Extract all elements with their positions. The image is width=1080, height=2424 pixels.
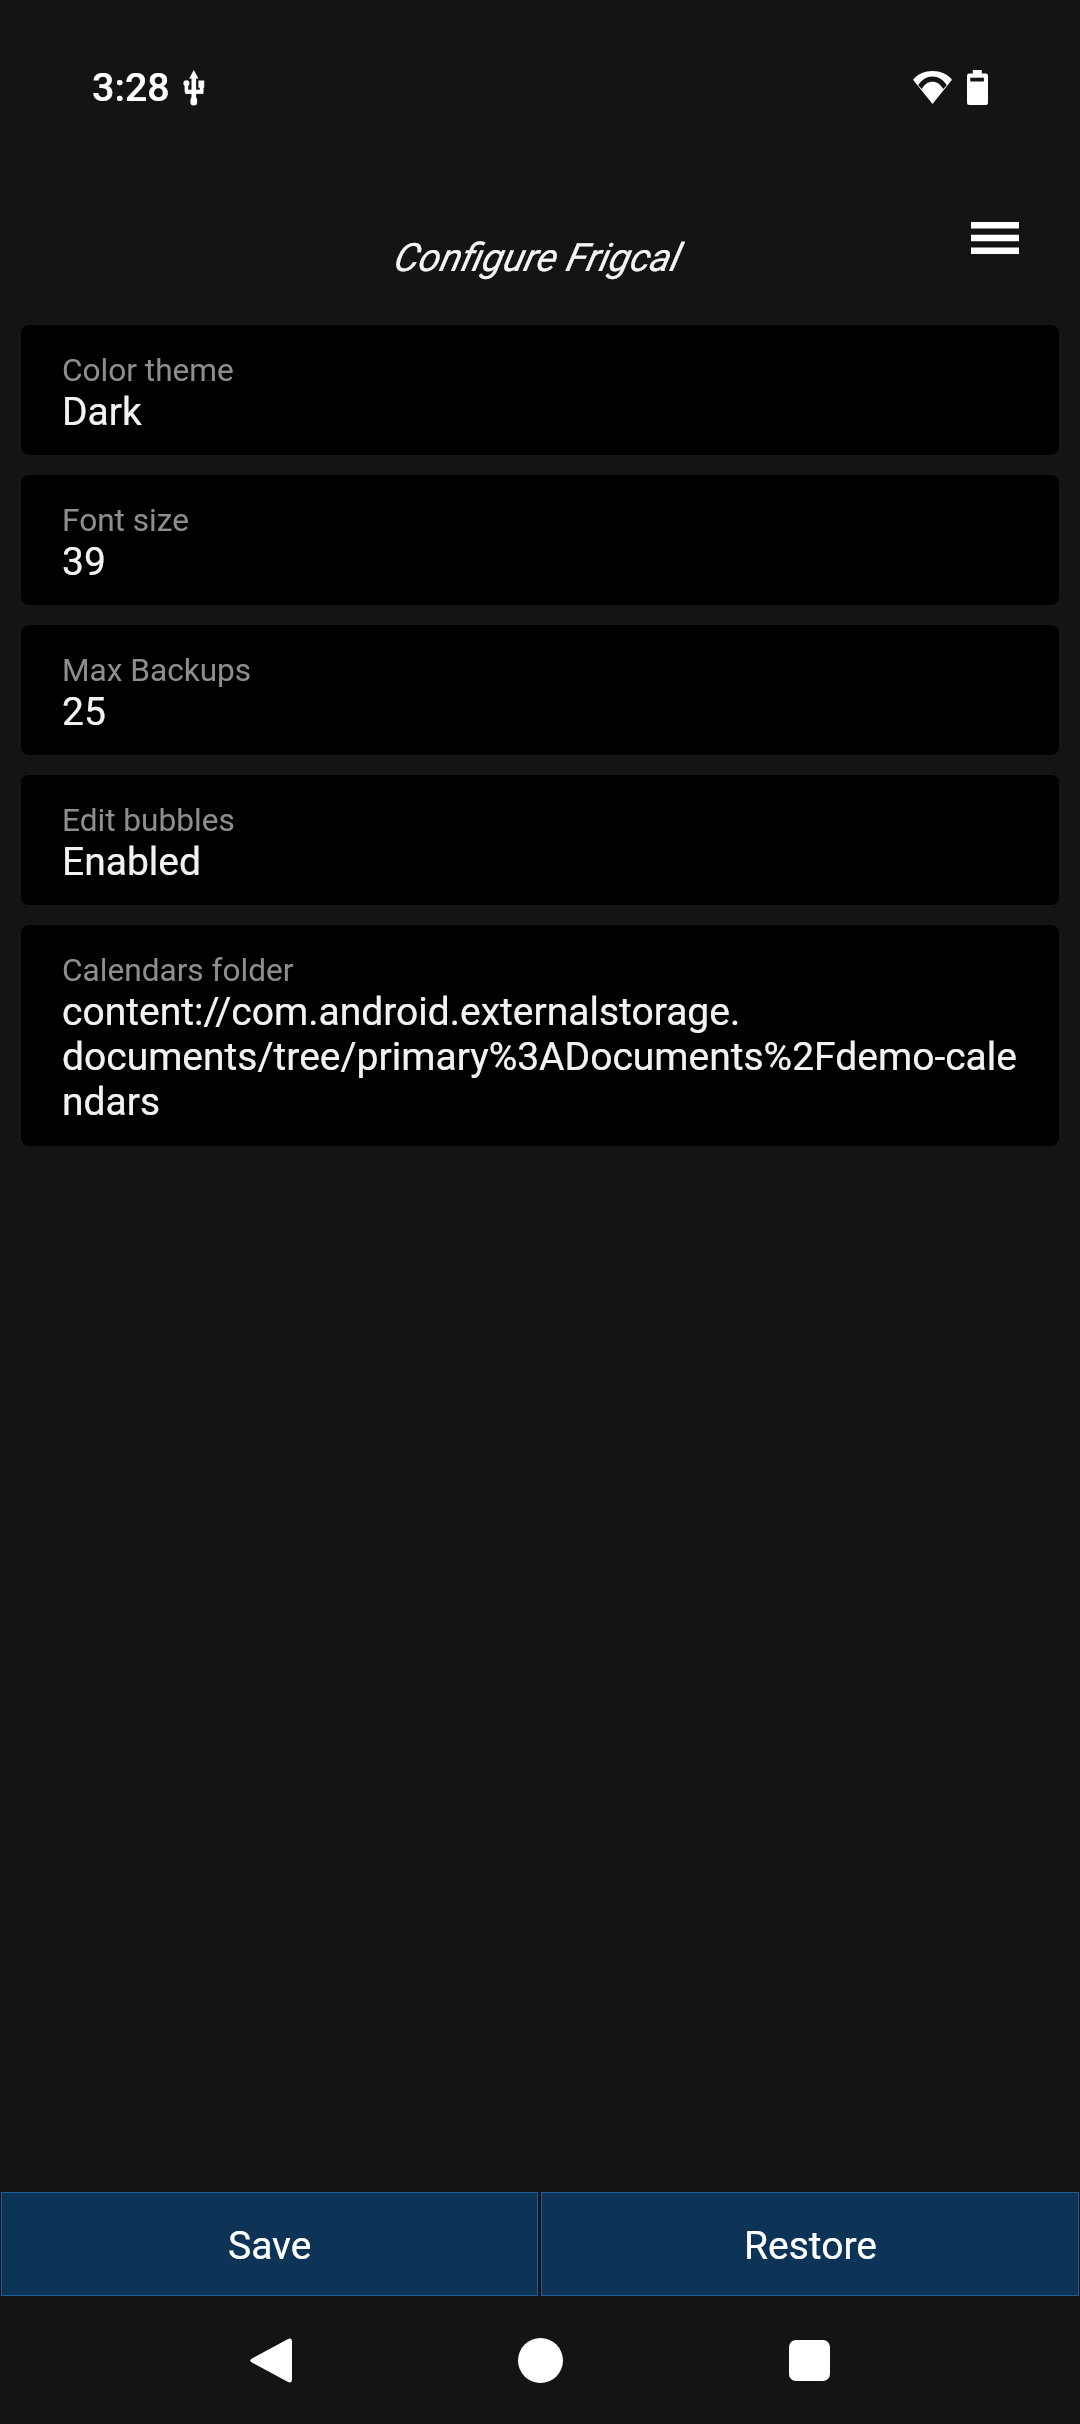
button[interactable]: Back <box>209 2298 333 2422</box>
staticText: Font size <box>62 495 189 540</box>
staticText: Calendars folder <box>62 945 294 990</box>
button[interactable]: Save <box>1 2192 538 2296</box>
staticText: 39 <box>62 540 106 585</box>
button[interactable]: Calendars folder <box>21 925 1059 1146</box>
staticText: 3:28 <box>92 64 170 110</box>
staticText: Color theme <box>62 345 234 390</box>
staticText: Configure Frigcal <box>392 235 678 281</box>
button[interactable]: Color theme <box>21 325 1059 455</box>
staticText: content://com.android.externalstorage. d… <box>62 990 1017 1125</box>
staticText: Restore <box>744 2227 877 2267</box>
button[interactable]: Home <box>478 2298 602 2422</box>
staticText: Edit bubbles <box>62 795 235 840</box>
staticText: Save <box>228 2227 312 2267</box>
staticText: Max Backups <box>62 645 252 690</box>
button[interactable]: Edit bubbles <box>21 775 1059 905</box>
button[interactable]: Font size <box>21 475 1059 605</box>
button[interactable]: Menu <box>947 190 1043 286</box>
button[interactable]: Max Backups <box>21 625 1059 755</box>
button[interactable]: Recents <box>747 2298 871 2422</box>
staticText: Enabled <box>62 840 201 885</box>
button[interactable]: Restore <box>541 2192 1079 2296</box>
staticText: 25 <box>62 690 106 735</box>
staticText: Dark <box>62 390 142 435</box>
